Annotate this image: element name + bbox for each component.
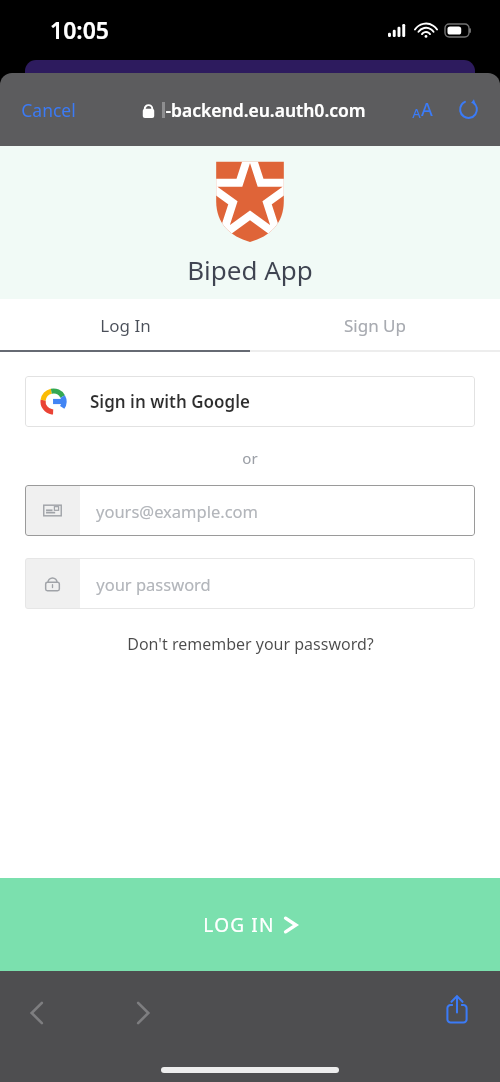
button[interactable]: Forward bbox=[128, 993, 158, 1033]
button[interactable]: Cancel bbox=[20, 94, 77, 126]
button[interactable]: Don't remember your password? bbox=[121, 630, 380, 658]
staticText: LOG IN bbox=[203, 912, 275, 938]
staticText: or bbox=[242, 448, 258, 468]
button[interactable]: Log In bbox=[0, 299, 250, 352]
staticText: -backend.eu.auth0.com bbox=[165, 98, 366, 122]
staticText: yours@example.com bbox=[96, 500, 258, 522]
button[interactable]: Share bbox=[439, 988, 475, 1030]
staticText: A bbox=[421, 97, 433, 122]
staticText: Cancel bbox=[21, 98, 76, 122]
staticText: Sign in with Google bbox=[90, 390, 250, 413]
staticText: A bbox=[412, 104, 421, 122]
button[interactable]: Email bbox=[25, 485, 475, 536]
button[interactable]: Password bbox=[25, 558, 475, 609]
staticText: your password bbox=[96, 573, 211, 595]
staticText: 10:05 bbox=[50, 14, 109, 45]
button[interactable]: Back bbox=[22, 993, 52, 1033]
button[interactable]: Sign in with Google bbox=[25, 376, 475, 427]
button[interactable]: Reload bbox=[455, 96, 482, 123]
staticText: Sign Up bbox=[344, 314, 406, 337]
staticText: Log In bbox=[100, 314, 151, 337]
button[interactable]: Sign Up bbox=[250, 299, 500, 352]
button[interactable]: LOG IN bbox=[0, 878, 500, 971]
staticText: Biped App bbox=[187, 252, 313, 287]
button[interactable]: Text size bbox=[408, 93, 437, 126]
staticText: Don't remember your password? bbox=[127, 633, 374, 655]
